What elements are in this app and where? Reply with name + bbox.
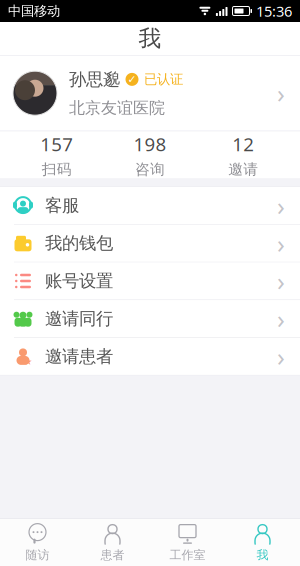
staticText: 我 [138, 25, 161, 52]
staticText: 中国移动 [8, 3, 60, 19]
staticText: 客服 [45, 195, 79, 216]
staticText: › [277, 189, 285, 222]
staticText: 孙思邈 [69, 69, 120, 90]
staticText: 扫码 [42, 160, 72, 178]
staticText: 我的钱包 [45, 233, 113, 254]
button[interactable]: ★ [0, 338, 300, 375]
staticText: 北京友谊医院 [69, 98, 165, 118]
staticText: 工作室 [169, 548, 205, 562]
staticText: 15:36 [256, 1, 292, 21]
button[interactable]: 我 [225, 519, 300, 566]
staticText: 12 [232, 131, 254, 156]
staticText: 157 [40, 131, 73, 156]
button[interactable]: 工作室 [150, 519, 225, 566]
button[interactable]: 我的钱包 [0, 225, 300, 262]
staticText: 患者 [100, 548, 124, 562]
button[interactable]: 客服 [0, 187, 300, 224]
staticText: 随访 [25, 548, 49, 562]
staticText: 198 [133, 131, 166, 156]
staticText: › [277, 76, 285, 110]
staticText: 我 [256, 548, 268, 562]
staticText: 账号设置 [45, 270, 113, 292]
staticText: › [277, 264, 285, 298]
staticText: › [277, 226, 285, 260]
staticText: 邀请同行 [45, 308, 113, 329]
staticText: 已认证 [144, 71, 183, 88]
staticText: 邀请患者 [45, 346, 113, 367]
staticText: ★ [24, 356, 32, 367]
button[interactable]: 孙思邈 [0, 56, 300, 131]
button[interactable]: 邀请同行 [0, 300, 300, 337]
button[interactable]: 患者 [75, 519, 150, 566]
staticText: › [277, 340, 285, 373]
staticText: 咨询 [135, 160, 165, 178]
staticText: ✓ [127, 73, 136, 85]
button[interactable]: 随访 [0, 519, 75, 566]
button[interactable]: 账号设置 [0, 262, 300, 299]
staticText: 邀请 [228, 160, 258, 178]
staticText: › [277, 302, 285, 335]
